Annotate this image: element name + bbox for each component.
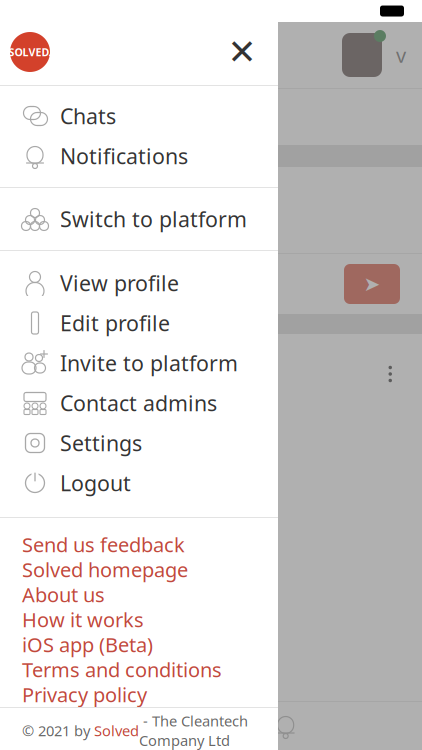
button[interactable]: Edit profile [0, 303, 278, 343]
button[interactable]: Close menu [214, 19, 270, 85]
staticText: Contact admins [60, 389, 217, 417]
button[interactable]: Settings [0, 423, 278, 463]
staticText: Solved homepage [22, 556, 188, 583]
staticText: Chats [60, 102, 116, 130]
staticText: - The Cleantech Company Ltd [139, 711, 248, 750]
staticText: Edit profile [60, 309, 170, 337]
staticText: SOLVED. [8, 45, 51, 59]
button[interactable]: Chats [0, 96, 278, 136]
staticText: Switch to platform [60, 205, 247, 233]
button[interactable]: View profile [0, 263, 278, 303]
staticText: Invite to platform [60, 349, 238, 377]
staticText: an expert to help [14, 417, 171, 444]
staticText: ility [0, 666, 26, 689]
staticText: View profile [60, 269, 179, 297]
staticText: ntries including [4, 515, 147, 542]
staticText: Send us feedback [22, 531, 185, 558]
button[interactable]: Privacy policy [0, 682, 278, 707]
button[interactable]: Terms and conditions [0, 657, 278, 682]
button[interactable]: How it works [0, 607, 278, 632]
staticText: culations qualify as [4, 450, 181, 477]
button[interactable]: About us [0, 582, 278, 607]
button[interactable]: Logout [0, 463, 278, 503]
button[interactable]: Send us feedback [0, 532, 278, 557]
button[interactable]: Contact admins [0, 383, 278, 423]
staticText: le service [32, 482, 118, 509]
button[interactable]: Solved homepage [0, 557, 278, 582]
button[interactable]: Solved home [0, 19, 60, 85]
button[interactable]: Invite to platform [0, 343, 278, 383]
staticText: v [396, 42, 406, 68]
staticText: © 2021 by [22, 721, 94, 740]
staticText: iOS app (Beta) [22, 631, 153, 658]
button[interactable]: Notifications [0, 136, 278, 176]
staticText: Settings [60, 429, 142, 457]
staticText: Solved [94, 721, 139, 740]
staticText: About us [22, 581, 105, 608]
staticText: re? [8, 196, 37, 224]
button[interactable]: iOS app (Beta) [0, 632, 278, 657]
staticText: How it works [22, 606, 144, 633]
staticText: Privacy policy [22, 681, 147, 708]
staticText: Terms and conditions [22, 656, 222, 683]
staticText: Logout [60, 469, 131, 497]
button[interactable]: Switch to platform [0, 199, 278, 239]
staticText: ➤ [363, 273, 380, 295]
staticText: Notifications [60, 142, 188, 170]
staticText: ✕ [227, 32, 256, 72]
